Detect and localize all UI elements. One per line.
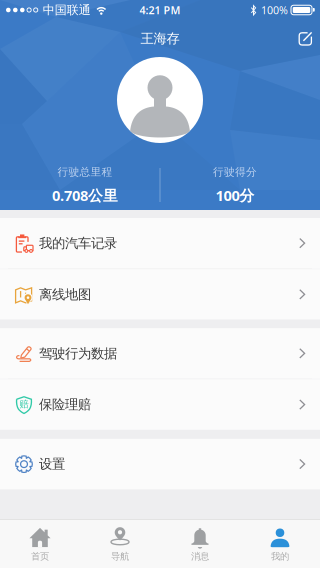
- staticText: 消息: [191, 551, 209, 562]
- button[interactable]: 驾驶行为数据: [0, 328, 320, 379]
- staticText: 离线地图: [39, 286, 91, 303]
- staticText: 0.708公里: [52, 185, 118, 205]
- button[interactable]: 我的: [240, 520, 320, 568]
- staticText: 我的汽车记录: [39, 235, 117, 251]
- button[interactable]: 编辑: [292, 25, 318, 52]
- staticText: 4:21 PM: [139, 3, 180, 17]
- button[interactable]: 设置: [0, 439, 320, 489]
- button[interactable]: 离线地图: [0, 269, 320, 320]
- button[interactable]: 首页: [0, 520, 80, 568]
- button[interactable]: 消息: [160, 520, 240, 568]
- staticText: 驾驶行为数据: [39, 345, 117, 362]
- staticText: 中国联通: [43, 3, 91, 17]
- staticText: 行驶总里程: [57, 165, 112, 178]
- staticText: 赔: [19, 398, 28, 410]
- staticText: 首页: [31, 551, 49, 562]
- staticText: 100%: [261, 3, 288, 17]
- staticText: 导航: [111, 551, 129, 562]
- staticText: 100分: [215, 185, 254, 205]
- staticText: 行驶得分: [213, 165, 257, 178]
- staticText: 保险理赔: [39, 396, 91, 413]
- button[interactable]: 导航: [80, 520, 160, 568]
- button[interactable]: 我的汽车记录: [0, 218, 320, 268]
- button[interactable]: 赔: [0, 379, 320, 430]
- staticText: 设置: [39, 456, 65, 472]
- staticText: 王海存: [140, 30, 179, 47]
- staticText: 我的: [271, 551, 289, 562]
